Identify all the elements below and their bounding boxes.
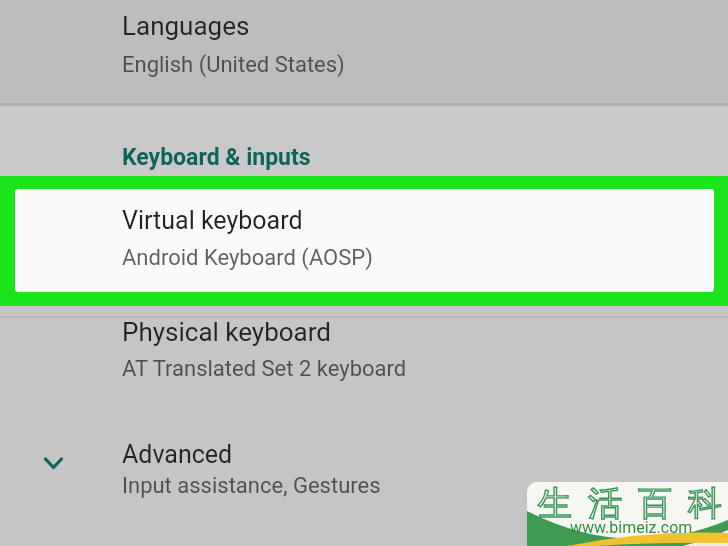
- staticText: Advanced: [122, 440, 233, 469]
- button[interactable]: [15, 189, 714, 292]
- staticText: AT Translated Set 2 keyboard: [122, 356, 407, 382]
- staticText: English (United States): [122, 52, 345, 78]
- staticText: Android Keyboard (AOSP): [122, 245, 373, 271]
- staticText: Keyboard & inputs: [122, 144, 311, 171]
- staticText: Input assistance, Gestures: [122, 473, 381, 499]
- staticText: Languages: [122, 11, 250, 41]
- button[interactable]: [0, 428, 728, 518]
- staticText: www.bimeiz.com: [570, 518, 693, 537]
- staticText: Physical keyboard: [122, 317, 331, 347]
- staticText: Virtual keyboard: [122, 206, 303, 235]
- staticText: 生活百科: [530, 482, 728, 525]
- button[interactable]: [0, 0, 728, 103]
- button[interactable]: [0, 318, 728, 410]
